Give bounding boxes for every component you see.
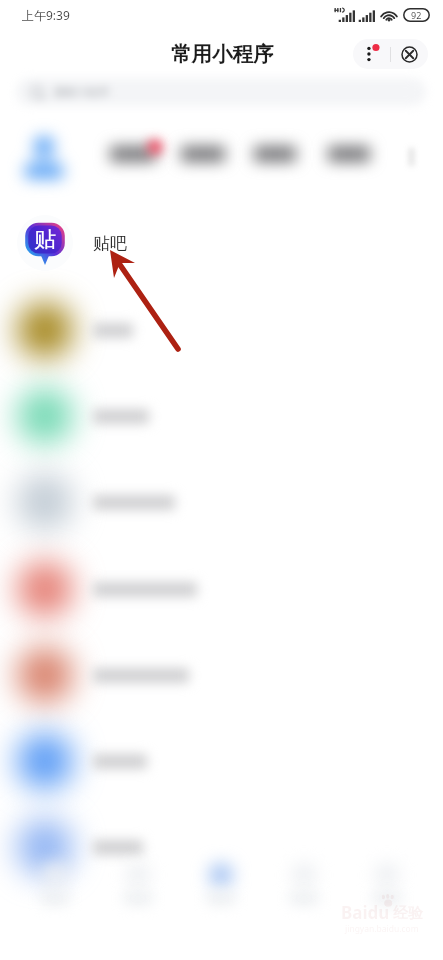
button[interactable] xyxy=(0,287,443,373)
staticText: 常用小程序 xyxy=(171,41,274,67)
button[interactable]: Tab 5 xyxy=(351,845,423,915)
button[interactable]: Close xyxy=(391,39,428,69)
staticText: 经验 xyxy=(393,904,423,923)
staticText: 92 xyxy=(411,9,422,21)
button[interactable] xyxy=(0,546,443,632)
button[interactable]: 贴 xyxy=(0,200,443,286)
staticText: 贴吧 xyxy=(93,233,127,254)
button[interactable]: Tab 1 xyxy=(19,845,91,915)
button[interactable]: 搜索小程序 xyxy=(16,78,426,106)
button[interactable] xyxy=(0,804,443,890)
button[interactable]: Tab 3 xyxy=(185,845,257,915)
button[interactable] xyxy=(0,459,443,545)
staticText: 搜索小程序 xyxy=(54,85,109,99)
button[interactable]: Tab 4 xyxy=(268,845,340,915)
staticText: 贴 xyxy=(34,226,56,254)
staticText: Baidu xyxy=(341,901,390,924)
button[interactable] xyxy=(0,373,443,459)
button[interactable]: Tab 2 xyxy=(102,845,174,915)
staticText: 上午9:39 xyxy=(22,7,70,23)
button[interactable]: More options xyxy=(353,39,390,69)
button[interactable] xyxy=(0,718,443,804)
button[interactable] xyxy=(0,632,443,718)
